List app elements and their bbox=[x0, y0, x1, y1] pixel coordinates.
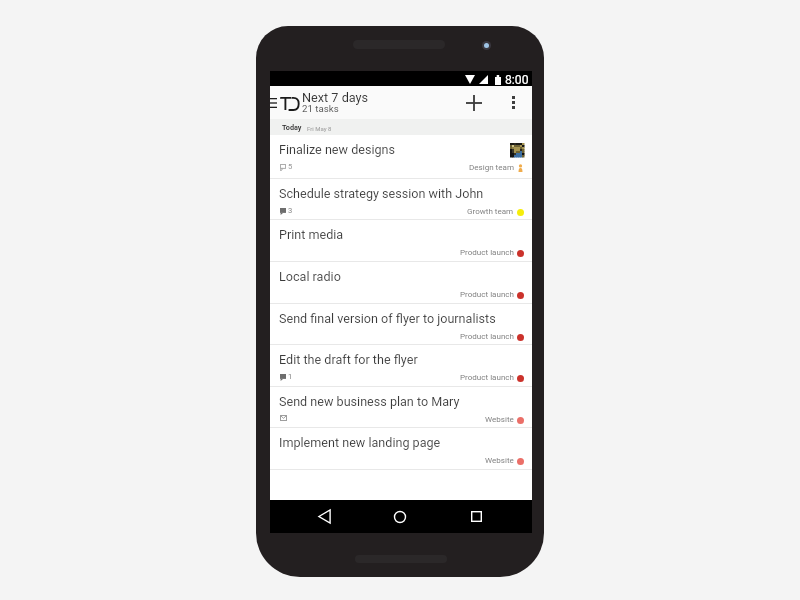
staticText: Product launch bbox=[460, 332, 514, 341]
staticText: Finalize new designs bbox=[279, 142, 395, 157]
button[interactable]: Local radio bbox=[270, 262, 532, 304]
staticText: 5 bbox=[288, 162, 293, 171]
button[interactable]: Print media bbox=[270, 220, 532, 262]
staticText: Website bbox=[485, 415, 514, 424]
staticText: 8:00 bbox=[505, 73, 529, 87]
button[interactable]: Add task bbox=[459, 86, 491, 119]
staticText: Product launch bbox=[460, 248, 514, 257]
staticText: Product launch bbox=[460, 290, 514, 299]
staticText: Send final version of flyer to journalis… bbox=[279, 311, 496, 326]
staticText: Growth team bbox=[467, 207, 514, 216]
button[interactable]: Edit the draft for the flyer bbox=[270, 345, 532, 387]
staticText: 1 bbox=[288, 372, 293, 381]
staticText: Next 7 days bbox=[302, 90, 369, 105]
staticText: Design team bbox=[469, 163, 514, 172]
staticText: Implement new landing page bbox=[279, 435, 441, 450]
button[interactable]: Send final version of flyer to journalis… bbox=[270, 304, 532, 345]
button[interactable]: Send new business plan to Mary bbox=[270, 387, 532, 428]
button[interactable]: Back bbox=[302, 500, 346, 533]
staticText: 3 bbox=[288, 206, 293, 215]
staticText: Website bbox=[485, 456, 514, 465]
button[interactable]: Finalize new designs bbox=[270, 135, 532, 179]
staticText: Today bbox=[282, 123, 302, 132]
staticText: Schedule strategy session with John bbox=[279, 186, 484, 201]
staticText: 21 tasks bbox=[302, 103, 339, 114]
button[interactable]: Recent apps bbox=[454, 500, 498, 533]
staticText: Print media bbox=[279, 227, 344, 242]
button[interactable]: Implement new landing page bbox=[270, 428, 532, 470]
staticText: Local radio bbox=[279, 269, 341, 284]
button[interactable]: More options bbox=[500, 86, 526, 119]
button[interactable]: Schedule strategy session with John bbox=[270, 179, 532, 220]
button[interactable]: Open navigation menu bbox=[270, 86, 280, 119]
staticText: Edit the draft for the flyer bbox=[279, 352, 418, 367]
staticText: Fri May 8 bbox=[307, 125, 332, 132]
staticText: Product launch bbox=[460, 373, 514, 382]
button[interactable]: Home bbox=[378, 500, 422, 533]
staticText: Send new business plan to Mary bbox=[279, 394, 460, 409]
